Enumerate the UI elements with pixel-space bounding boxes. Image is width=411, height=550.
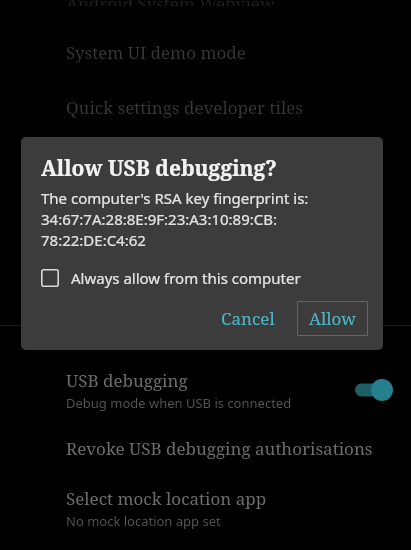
button[interactable]: Revoke USB debugging authorisations: [0, 428, 411, 468]
staticText: System UI demo mode: [66, 41, 246, 64]
button[interactable]: Select mock location app: [0, 484, 411, 532]
staticText: Allow USB debugging?: [41, 154, 277, 183]
staticText: USB debugging: [66, 369, 188, 392]
staticText: The computer's RSA key fingerprint is: 3…: [41, 188, 309, 251]
button[interactable]: Allow: [297, 301, 368, 336]
staticText: No mock location app set: [66, 512, 221, 530]
staticText: DEBUGGING: [66, 336, 147, 352]
staticText: Quick settings developer tiles: [66, 96, 303, 119]
button[interactable]: Cancel: [211, 301, 285, 336]
button[interactable]: Always allow from this computer: [41, 263, 301, 293]
button[interactable]: Android System Webview: [0, 0, 411, 14]
button[interactable]: Toggle USB debugging: [341, 375, 393, 405]
staticText: Revoke USB debugging authorisations: [66, 437, 373, 460]
staticText: Allow: [309, 307, 356, 330]
staticText: Always allow from this computer: [71, 268, 301, 288]
button[interactable]: Quick settings developer tiles: [0, 87, 411, 127]
staticText: Cancel: [221, 307, 275, 330]
button[interactable]: System UI demo mode: [0, 32, 411, 72]
button[interactable]: USB debugging: [0, 366, 411, 414]
staticText: Select mock location app: [66, 487, 267, 510]
staticText: Android System Webview: [66, 0, 275, 6]
staticText: Debug mode when USB is connected: [66, 394, 292, 412]
